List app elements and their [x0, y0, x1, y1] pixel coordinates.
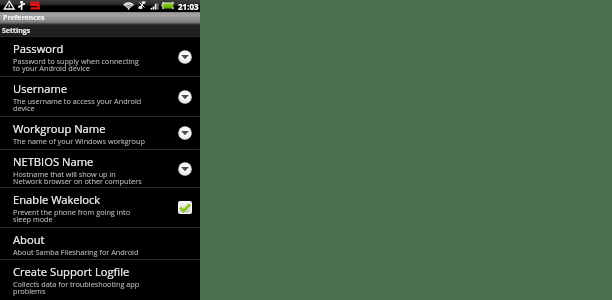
staticText: Password to supply when connecting to yo…	[13, 56, 139, 73]
button[interactable]: Preferences	[0, 12, 200, 24]
staticText: Enable Wakelock	[13, 192, 101, 207]
button[interactable]: Enable Wakelock	[178, 201, 192, 214]
staticText: About Samba Filesharing for Android	[13, 247, 139, 257]
staticText: The name of your Windows workgroup	[13, 136, 145, 146]
button[interactable]: Expand	[178, 126, 192, 140]
staticText: Settings	[2, 26, 31, 36]
staticText: Prevent the phone from going into sleep …	[13, 207, 131, 224]
staticText: About	[13, 232, 45, 247]
staticText: Hostname that will show up in Network br…	[13, 169, 142, 186]
button[interactable]: Create Support Logfile	[0, 260, 200, 300]
button[interactable]: Password	[0, 37, 200, 76]
staticText: Preferences	[3, 13, 45, 23]
staticText: Collects data for troubleshooting app pr…	[13, 279, 140, 296]
staticText: Create Support Logfile	[13, 264, 130, 279]
button[interactable]: Enable Wakelock	[0, 188, 200, 227]
staticText: Workgroup Name	[13, 121, 106, 136]
button[interactable]: Expand	[178, 50, 192, 64]
staticText: NETBIOS Name	[13, 154, 94, 169]
staticText: Username	[13, 81, 68, 96]
button[interactable]: Workgroup Name	[0, 117, 200, 149]
button[interactable]: Expand	[178, 90, 192, 104]
staticText: Password	[13, 41, 64, 56]
staticText: The username to access your Android devi…	[13, 96, 142, 113]
staticText: 21:03	[178, 1, 199, 12]
button[interactable]: Username	[0, 77, 200, 116]
button[interactable]: NETBIOS Name	[0, 150, 200, 187]
button[interactable]: About	[0, 228, 200, 259]
button[interactable]: Expand	[178, 162, 192, 176]
